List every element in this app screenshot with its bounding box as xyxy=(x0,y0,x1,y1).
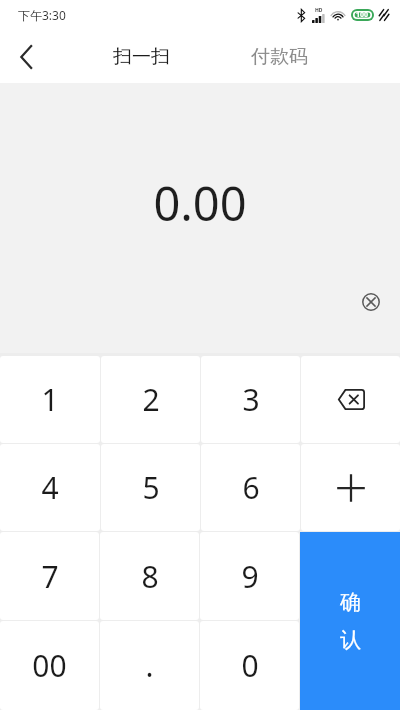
staticText: 00 xyxy=(32,645,67,686)
button[interactable]: Clear xyxy=(355,286,387,318)
staticText: 9 xyxy=(241,556,259,597)
button[interactable]: 0 xyxy=(200,621,299,710)
button[interactable]: 9 xyxy=(200,532,299,620)
staticText: 认 xyxy=(340,627,361,653)
button[interactable]: Backspace xyxy=(301,356,400,443)
button[interactable]: 8 xyxy=(100,532,199,620)
staticText: 4 xyxy=(41,467,59,508)
button[interactable]: Back xyxy=(0,31,52,83)
staticText: 5 xyxy=(142,467,160,508)
staticText: HD xyxy=(315,7,323,14)
staticText: 扫一扫 xyxy=(113,45,170,69)
staticText: 0 xyxy=(241,645,259,686)
button[interactable]: 付款码 xyxy=(241,39,318,75)
staticText: 付款码 xyxy=(251,45,308,69)
button[interactable]: 3 xyxy=(201,356,300,443)
staticText: 确 xyxy=(340,589,361,615)
button[interactable]: 2 xyxy=(101,356,200,443)
staticText: 下午3:30 xyxy=(18,7,66,23)
staticText: 3 xyxy=(242,379,260,420)
button[interactable]: . xyxy=(100,621,199,710)
button[interactable]: 1 xyxy=(0,356,100,443)
staticText: 0.00 xyxy=(153,171,247,235)
staticText: 8 xyxy=(141,556,159,597)
staticText: 1 xyxy=(41,379,59,420)
staticText: . xyxy=(145,645,154,686)
staticText: 7 xyxy=(41,556,59,597)
button[interactable]: 确 xyxy=(300,532,400,710)
button[interactable]: 5 xyxy=(101,444,200,531)
button[interactable]: Add xyxy=(301,444,400,531)
button[interactable]: 7 xyxy=(0,532,99,620)
button[interactable]: 扫一扫 xyxy=(103,39,180,75)
staticText: 100 xyxy=(356,10,369,20)
button[interactable]: 00 xyxy=(0,621,99,710)
button[interactable]: 6 xyxy=(201,444,300,531)
staticText: 2 xyxy=(142,379,160,420)
staticText: 6 xyxy=(242,467,260,508)
button[interactable]: 4 xyxy=(0,444,100,531)
